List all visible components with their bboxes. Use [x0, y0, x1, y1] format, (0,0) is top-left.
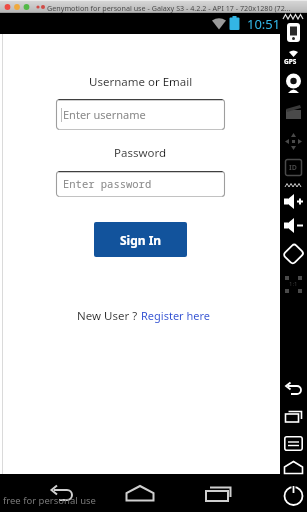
staticText: Password	[114, 145, 167, 161]
button[interactable]: Sign In	[94, 222, 187, 257]
button[interactable]	[283, 460, 304, 475]
button[interactable]	[125, 485, 155, 502]
staticText: Sign In	[120, 232, 162, 248]
button[interactable]	[284, 73, 303, 94]
staticText: 1:1	[289, 280, 298, 288]
button[interactable]	[283, 381, 304, 399]
staticText: free for personal use	[3, 494, 96, 507]
button[interactable]: Register here	[141, 308, 211, 323]
staticText: New User ?	[77, 308, 141, 324]
button[interactable]	[284, 409, 303, 426]
staticText: GPS	[284, 57, 297, 66]
staticText: Enter password	[63, 177, 152, 191]
staticText: ID	[289, 163, 297, 173]
button[interactable]	[204, 485, 232, 503]
button[interactable]	[283, 241, 304, 267]
button[interactable]	[285, 133, 302, 150]
button[interactable]	[282, 484, 305, 507]
button[interactable]	[287, 23, 300, 42]
button[interactable]	[284, 436, 303, 451]
button[interactable]: ID	[285, 159, 302, 176]
button[interactable]: 1:1	[285, 275, 302, 294]
button[interactable]: GPS	[283, 50, 304, 66]
button[interactable]	[285, 104, 302, 119]
staticText: 10:51	[247, 15, 281, 33]
button[interactable]	[284, 217, 303, 234]
button[interactable]	[48, 484, 78, 502]
button[interactable]: Enter password	[56, 171, 225, 197]
staticText: Genymotion for personal use - Galaxy S3 …	[47, 3, 291, 13]
staticText: Enter username	[63, 107, 146, 122]
button[interactable]	[284, 193, 303, 210]
staticText: Username or Email	[89, 74, 193, 90]
button[interactable]: Enter username	[56, 99, 225, 130]
